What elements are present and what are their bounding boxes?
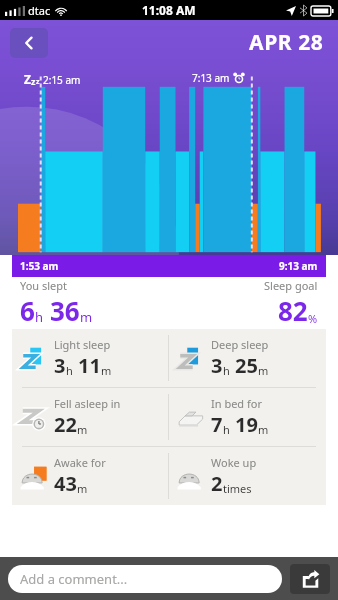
staticText: m (258, 363, 269, 378)
staticText: You slept (20, 278, 68, 293)
staticText: 25 (235, 352, 258, 379)
button[interactable]: Light sleep (12, 329, 168, 387)
staticText: m (80, 308, 93, 326)
staticText: Awake for (54, 455, 106, 470)
staticText: 43 (54, 470, 77, 497)
staticText: m (258, 422, 269, 437)
staticText: z (36, 77, 40, 87)
button[interactable]: Sharing (78, 574, 147, 592)
staticText: 82 (278, 293, 308, 328)
staticText: Z (24, 71, 31, 87)
staticText: 2 (211, 470, 223, 497)
staticText: h (223, 363, 230, 378)
button[interactable]: Add a comment... (8, 565, 282, 593)
staticText: Sleep goal (264, 278, 318, 293)
staticText: 3 (54, 352, 66, 379)
staticText: m (77, 422, 88, 437)
staticText: Deep sleep (211, 337, 269, 352)
staticText: 9:13 am (279, 259, 318, 273)
button[interactable]: Back (10, 28, 48, 58)
staticText: h (35, 308, 44, 326)
staticText: 2:15 am (43, 73, 81, 87)
staticText: 11:08 AM (142, 2, 196, 18)
staticText: 1:53 am (20, 259, 59, 273)
staticText: Add a comment... (20, 570, 128, 588)
staticText: 36 (50, 293, 80, 328)
staticText: 6 (20, 293, 35, 328)
staticText: 3 (211, 352, 223, 379)
staticText: m (101, 363, 112, 378)
staticText: In bed for (211, 396, 262, 411)
staticText: 7:13 am (192, 71, 230, 85)
button[interactable]: Awake for (12, 447, 168, 505)
button[interactable]: Woke up (169, 447, 326, 505)
staticText: Sharing (99, 574, 147, 592)
staticText: h (66, 363, 73, 378)
button[interactable]: Edit (18, 574, 78, 592)
staticText: % (308, 311, 318, 326)
staticText: 22 (54, 411, 77, 438)
staticText: Fell asleep in (54, 396, 121, 411)
staticText: 7 (211, 411, 223, 438)
staticText: h (223, 422, 230, 437)
staticText: Edit (40, 574, 64, 592)
staticText: 19 (235, 411, 258, 438)
staticText: APR 28 (249, 28, 324, 57)
staticText: z (31, 75, 36, 87)
button[interactable]: Deep sleep (169, 329, 326, 387)
staticText: Light sleep (54, 337, 111, 352)
staticText: dtac (28, 3, 51, 18)
staticText: Woke up (211, 455, 257, 470)
button[interactable]: Share (290, 564, 330, 594)
button[interactable]: Fell asleep in (12, 388, 168, 446)
staticText: times (223, 481, 252, 496)
button[interactable]: In bed for (169, 388, 326, 446)
staticText: 11 (78, 352, 101, 379)
staticText: m (77, 481, 88, 496)
